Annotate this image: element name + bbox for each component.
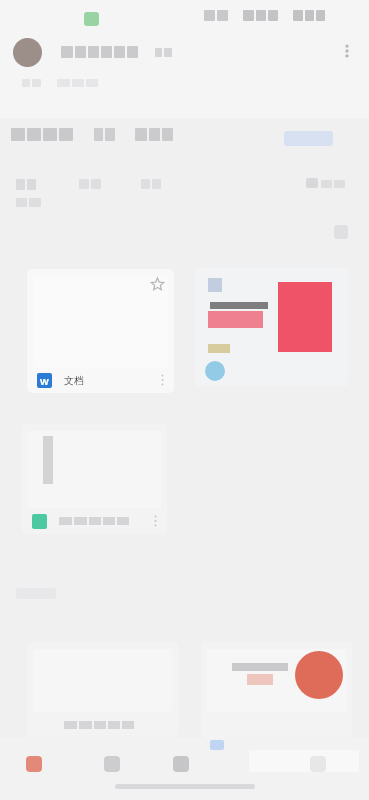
button[interactable]: More options — [336, 40, 358, 62]
button[interactable]: Me — [298, 744, 338, 784]
button[interactable] — [27, 642, 178, 738]
button[interactable] — [201, 642, 352, 738]
button[interactable]: Templates — [92, 744, 132, 784]
button[interactable]: Create new document — [295, 651, 343, 699]
button[interactable]: W — [27, 269, 174, 393]
button[interactable]: Advertisement — [195, 268, 348, 386]
button[interactable]: Home — [14, 744, 54, 784]
staticText: 文档 — [64, 374, 84, 387]
button[interactable]: Apps — [161, 744, 201, 784]
staticText: W — [40, 375, 49, 387]
button[interactable] — [22, 424, 167, 534]
button[interactable]: Account — [13, 38, 42, 67]
